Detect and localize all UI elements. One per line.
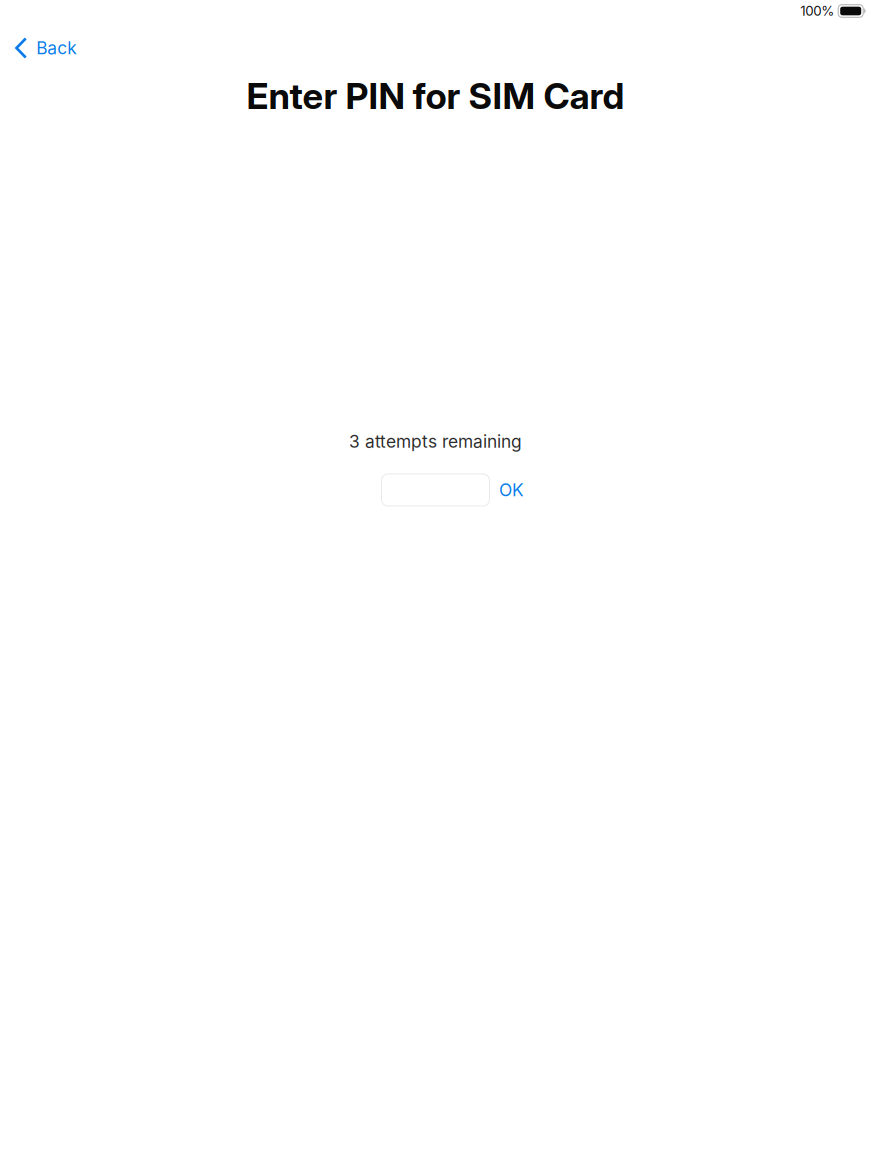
button[interactable]: OK bbox=[489, 474, 533, 506]
staticText: 100% bbox=[800, 3, 834, 19]
button[interactable]: Back bbox=[0, 33, 871, 63]
staticText: 3 attempts remaining bbox=[349, 431, 522, 452]
staticText: OK bbox=[499, 479, 524, 500]
staticText: Back bbox=[36, 37, 77, 58]
staticText: Enter PIN for SIM Card bbox=[246, 74, 624, 118]
